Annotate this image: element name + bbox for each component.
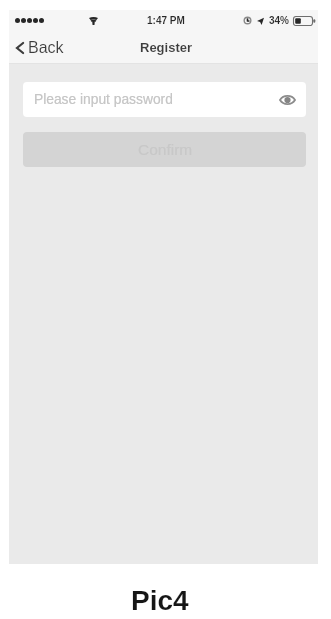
staticText: 34% bbox=[269, 15, 290, 26]
button[interactable]: Please input password bbox=[23, 82, 306, 117]
staticText: Back bbox=[28, 39, 64, 57]
staticText: Register bbox=[140, 40, 193, 55]
staticText: Confirm bbox=[138, 141, 193, 158]
staticText: Pic4 bbox=[131, 585, 189, 616]
button[interactable]: Back bbox=[9, 34, 72, 62]
staticText: 1:47 PM bbox=[147, 15, 185, 26]
button[interactable]: Show password bbox=[277, 90, 297, 110]
staticText: Please input password bbox=[34, 92, 173, 107]
